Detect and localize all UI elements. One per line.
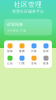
staticText: 活动: [31, 62, 37, 65]
staticText: 公告: [7, 62, 13, 65]
staticText: 更多: [43, 62, 49, 65]
staticText: 报修: [7, 49, 13, 53]
staticText: 欢迎回来: [7, 22, 23, 27]
staticText: 投诉: [43, 49, 49, 53]
staticText: 今日待办 3 项: [7, 29, 26, 32]
staticText: 社区管理: [14, 0, 42, 9]
staticText: 门禁: [19, 62, 25, 65]
staticText: 缴费: [19, 49, 25, 53]
staticText: 智慧社区服务平台: [12, 9, 44, 14]
staticText: 访客: [31, 49, 37, 53]
